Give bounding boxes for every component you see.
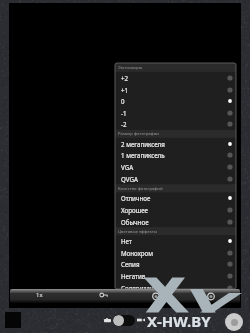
button[interactable]: Отличное bbox=[115, 192, 236, 204]
staticText: Негатив bbox=[121, 272, 230, 280]
button[interactable]: Обычное bbox=[115, 216, 236, 228]
button[interactable]: Негатив bbox=[115, 270, 236, 282]
button[interactable]: Camera setting bbox=[150, 290, 162, 302]
staticText: VGA bbox=[121, 163, 230, 171]
button[interactable]: +2 bbox=[115, 72, 236, 84]
staticText: Качество фотографий bbox=[118, 186, 163, 192]
button[interactable]: 2 мегапикселя bbox=[115, 138, 236, 150]
staticText: 2 мегапикселя bbox=[121, 140, 230, 148]
button[interactable]: QVGA bbox=[115, 173, 236, 185]
button[interactable]: VGA bbox=[115, 161, 236, 173]
staticText: Соляризация bbox=[121, 284, 230, 289]
button[interactable]: Монохром bbox=[115, 247, 236, 259]
staticText: +2 bbox=[121, 74, 230, 82]
button[interactable]: Соляризация bbox=[115, 282, 236, 289]
staticText: Обычное bbox=[121, 218, 230, 226]
staticText: Цветовые эффекты bbox=[118, 229, 157, 235]
staticText: Отличное bbox=[121, 194, 230, 202]
button[interactable]: Camera video mode bbox=[104, 313, 145, 327]
staticText: Монохром bbox=[121, 249, 230, 257]
other: x-hw.by watermark bbox=[0, 0, 250, 333]
button[interactable]: 1x bbox=[10, 289, 240, 303]
staticText: Хорошее bbox=[121, 206, 230, 214]
button[interactable]: Хорошее bbox=[115, 204, 236, 216]
button[interactable]: Camera setting bbox=[205, 290, 217, 302]
staticText: Размер фотографии bbox=[118, 131, 159, 137]
staticText: 0 bbox=[121, 97, 230, 105]
staticText: +1 bbox=[121, 86, 230, 94]
staticText: -2 bbox=[121, 120, 230, 128]
button[interactable]: Нет bbox=[115, 235, 236, 247]
button[interactable]: -1 bbox=[115, 107, 236, 119]
button[interactable]: 1 мегапиксель bbox=[115, 149, 236, 161]
staticText: Нет bbox=[121, 237, 230, 245]
button[interactable]: Shutter bbox=[225, 313, 243, 331]
staticText: QVGA bbox=[121, 175, 230, 183]
button[interactable]: 0 bbox=[115, 95, 236, 107]
staticText: Экспозиция bbox=[118, 65, 143, 71]
button[interactable]: Сепия bbox=[115, 258, 236, 270]
staticText: Сепия bbox=[121, 260, 230, 268]
button[interactable]: -2 bbox=[115, 118, 236, 130]
staticText: X-HW.BY bbox=[147, 311, 211, 331]
button[interactable]: +1 bbox=[115, 84, 236, 96]
staticText: 1 мегапиксель bbox=[121, 151, 230, 159]
staticText: 1x bbox=[36, 291, 43, 299]
staticText: -1 bbox=[121, 109, 230, 117]
